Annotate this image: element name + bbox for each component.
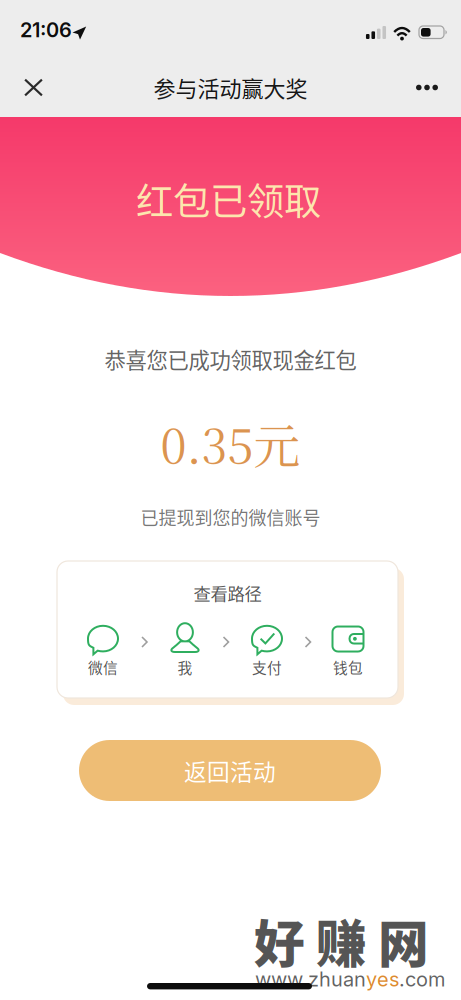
staticText: .com bbox=[399, 967, 445, 991]
staticText: 参与活动赢大奖 bbox=[153, 72, 307, 103]
staticText: 赚 bbox=[316, 904, 367, 977]
staticText: 查看路径 bbox=[193, 580, 261, 606]
staticText: 21:06 bbox=[20, 18, 72, 42]
staticText: 微信 bbox=[88, 656, 118, 678]
staticText: 我 bbox=[177, 656, 192, 678]
staticText: 已提现到您的微信账号 bbox=[140, 504, 320, 530]
staticText: 返回活动 bbox=[184, 754, 276, 787]
button[interactable]: Close bbox=[12, 66, 55, 108]
staticText: 支付 bbox=[252, 656, 282, 678]
button[interactable]: More options bbox=[404, 72, 450, 102]
staticText: 钱包 bbox=[333, 656, 363, 678]
staticText: www.zhuan bbox=[255, 967, 366, 991]
staticText: 红包已领取 bbox=[136, 172, 321, 226]
staticText: 恭喜您已成功领取现金红包 bbox=[104, 344, 356, 374]
button[interactable]: 返回活动 bbox=[79, 740, 381, 801]
staticText: yes bbox=[366, 967, 399, 991]
staticText: 好 bbox=[254, 904, 305, 977]
staticText: 网 bbox=[378, 904, 429, 977]
staticText: 0.35元 bbox=[160, 409, 300, 477]
